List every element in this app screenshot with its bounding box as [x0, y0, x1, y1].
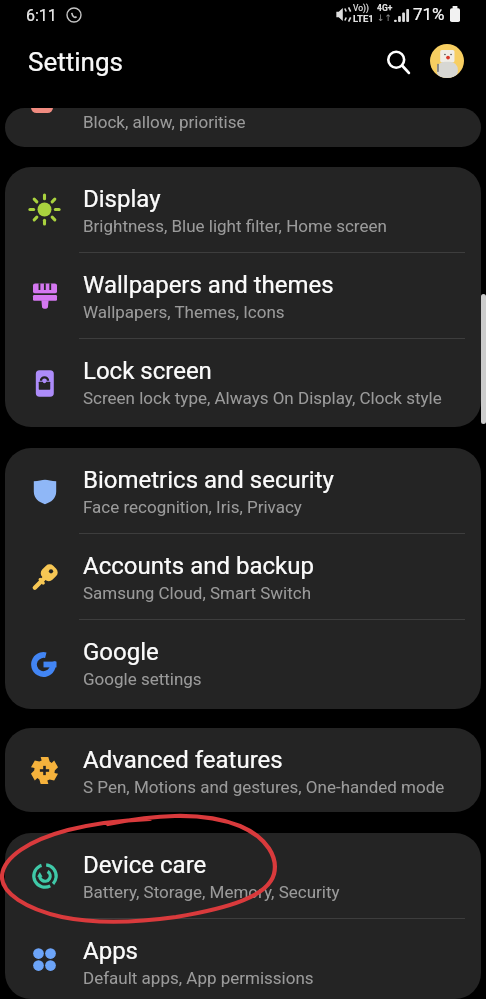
staticText: Biometrics and security: [83, 466, 334, 494]
staticText: Brightness, Blue light filter, Home scre…: [83, 216, 387, 236]
staticText: Settings: [28, 47, 123, 77]
staticText: Block, allow, prioritise: [83, 112, 246, 132]
button[interactable]: Display: [5, 167, 481, 252]
button[interactable]: Device care: [5, 833, 481, 918]
button[interactable]: Wallpapers and themes: [5, 253, 481, 338]
staticText: Vo)): [353, 3, 369, 13]
staticText: Google: [83, 638, 159, 666]
staticText: Default apps, App permissions: [83, 968, 314, 988]
staticText: Accounts and backup: [83, 552, 314, 580]
staticText: Screen lock type, Always On Display, Clo…: [83, 388, 442, 408]
staticText: LTE1: [353, 13, 374, 24]
button[interactable]: Lock screen: [5, 339, 481, 427]
staticText: Apps: [83, 937, 138, 965]
button[interactable]: Apps: [5, 919, 481, 999]
staticText: Lock screen: [83, 357, 212, 385]
staticText: Face recognition, Iris, Privacy: [83, 497, 302, 517]
button[interactable]: Biometrics and security: [5, 448, 481, 533]
staticText: Advanced features: [83, 746, 283, 774]
staticText: 4G+: [377, 3, 393, 13]
button[interactable]: Account: [430, 44, 464, 78]
staticText: Display: [83, 185, 161, 213]
button[interactable]: Search: [376, 40, 420, 84]
staticText: 71%: [413, 4, 445, 24]
staticText: Google settings: [83, 669, 202, 689]
staticText: Samsung Cloud, Smart Switch: [83, 583, 311, 603]
staticText: Wallpapers and themes: [83, 271, 334, 299]
button[interactable]: Accounts and backup: [5, 534, 481, 619]
staticText: Wallpapers, Themes, Icons: [83, 302, 285, 322]
button[interactable]: Advanced features: [5, 728, 481, 812]
staticText: Device care: [83, 851, 207, 879]
staticText: 6:11: [26, 6, 57, 25]
button[interactable]: Google: [5, 620, 481, 709]
staticText: Battery, Storage, Memory, Security: [83, 882, 340, 902]
staticText: S Pen, Motions and gestures, One-handed …: [83, 777, 445, 797]
staticText: ↓↑: [377, 13, 393, 23]
